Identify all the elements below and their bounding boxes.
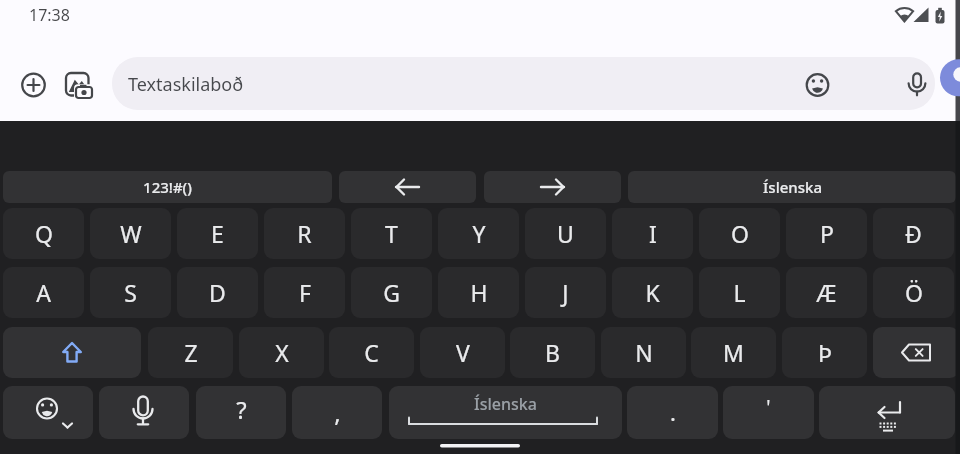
button[interactable]: Þ xyxy=(782,327,867,378)
staticText: V xyxy=(456,337,470,368)
button[interactable] xyxy=(819,386,955,439)
staticText: Þ xyxy=(818,337,832,368)
button[interactable]: I xyxy=(612,208,693,259)
button[interactable]: Y xyxy=(438,208,519,259)
staticText: ' xyxy=(766,394,771,420)
staticText: L xyxy=(733,277,746,308)
staticText: 17:38 xyxy=(29,4,70,26)
button[interactable] xyxy=(3,327,141,378)
button[interactable]: Q xyxy=(3,208,84,259)
staticText: A xyxy=(36,277,51,308)
staticText: ? xyxy=(236,393,247,426)
staticText: H xyxy=(470,277,488,308)
staticText: 123!#() xyxy=(143,177,192,197)
staticText: K xyxy=(645,277,660,308)
button[interactable]: J xyxy=(525,267,606,318)
button[interactable]: H xyxy=(438,267,519,318)
button[interactable]: ' xyxy=(723,386,814,439)
staticText: Íslenska xyxy=(763,177,822,197)
button[interactable] xyxy=(339,171,476,203)
button[interactable]: P xyxy=(786,208,867,259)
staticText: Ö xyxy=(905,277,923,308)
button[interactable]: Æ xyxy=(786,267,867,318)
staticText: Y xyxy=(472,218,486,249)
button[interactable]: E xyxy=(177,208,258,259)
staticText: F xyxy=(299,277,311,308)
button[interactable]: S xyxy=(90,267,171,318)
staticText: Æ xyxy=(816,277,837,308)
staticText: G xyxy=(383,277,400,308)
button[interactable]: Íslenska xyxy=(628,171,956,203)
button[interactable]: K xyxy=(612,267,693,318)
button[interactable]: M xyxy=(691,327,776,378)
staticText: D xyxy=(209,277,226,308)
button[interactable]: V xyxy=(420,327,505,378)
button[interactable]: . xyxy=(627,386,718,439)
staticText: Z xyxy=(184,337,198,368)
staticText: U xyxy=(557,218,574,249)
button[interactable] xyxy=(99,386,189,439)
staticText: E xyxy=(211,218,224,249)
button[interactable]: , xyxy=(292,386,382,439)
button[interactable] xyxy=(3,386,93,439)
button[interactable]: X xyxy=(239,327,324,378)
button[interactable] xyxy=(873,327,959,378)
button[interactable]: 123!#() xyxy=(3,171,332,203)
button[interactable]: R xyxy=(264,208,345,259)
staticText: S xyxy=(124,277,137,308)
staticText: Íslenska xyxy=(474,393,537,415)
staticText: P xyxy=(820,218,834,249)
button[interactable]: B xyxy=(510,327,595,378)
button[interactable] xyxy=(112,57,935,110)
button[interactable] xyxy=(484,171,621,203)
button[interactable]: O xyxy=(699,208,780,259)
staticText: R xyxy=(297,218,312,249)
staticText: M xyxy=(723,337,744,368)
button[interactable]: F xyxy=(264,267,345,318)
staticText: N xyxy=(635,337,653,368)
staticText: O xyxy=(731,218,749,249)
staticText: T xyxy=(385,218,398,249)
button[interactable]: D xyxy=(177,267,258,318)
staticText: B xyxy=(545,337,560,368)
button[interactable]: A xyxy=(3,267,84,318)
staticText: Q xyxy=(35,218,53,249)
staticText: W xyxy=(120,218,142,249)
staticText: C xyxy=(364,337,379,368)
staticText: X xyxy=(275,337,289,368)
staticText: , xyxy=(334,396,341,429)
staticText: . xyxy=(670,397,676,427)
button[interactable]: C xyxy=(329,327,414,378)
button[interactable]: Ö xyxy=(873,267,954,318)
staticText: Ð xyxy=(905,218,922,249)
button[interactable]: G xyxy=(351,267,432,318)
button[interactable]: T xyxy=(351,208,432,259)
staticText: I xyxy=(649,218,657,249)
staticText: J xyxy=(562,277,569,308)
button[interactable]: N xyxy=(601,327,686,378)
button[interactable]: Íslenska xyxy=(389,386,622,439)
button[interactable]: ? xyxy=(196,386,286,439)
staticText: Textaskilaboð xyxy=(128,72,244,97)
button[interactable]: L xyxy=(699,267,780,318)
button[interactable]: U xyxy=(525,208,606,259)
button[interactable]: Z xyxy=(148,327,233,378)
button[interactable]: W xyxy=(90,208,171,259)
button[interactable]: Ð xyxy=(873,208,954,259)
